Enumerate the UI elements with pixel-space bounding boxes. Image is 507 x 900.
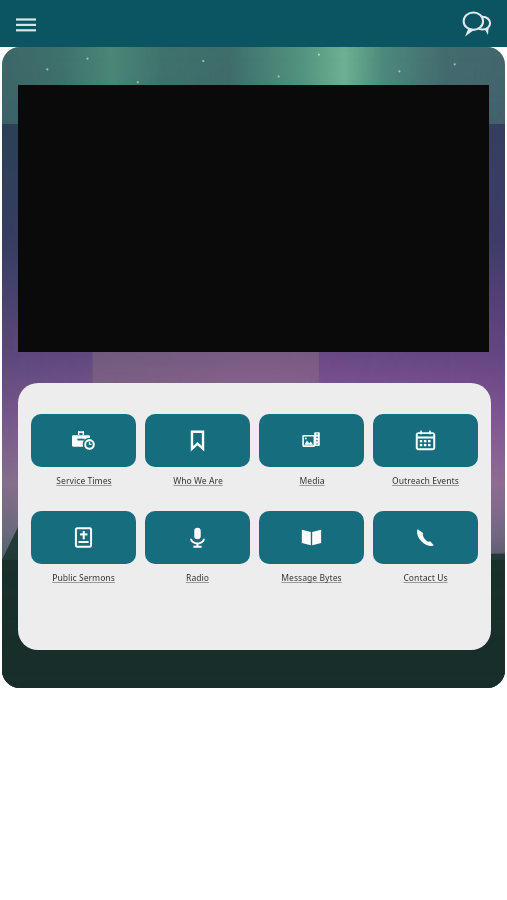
button[interactable]: Menu bbox=[8, 6, 44, 42]
button[interactable] bbox=[259, 414, 364, 467]
button[interactable] bbox=[31, 511, 136, 564]
staticText: Radio bbox=[186, 572, 209, 584]
button[interactable] bbox=[145, 511, 250, 564]
staticText: Who We Are bbox=[173, 475, 223, 487]
button[interactable] bbox=[31, 414, 136, 467]
staticText: Contact Us bbox=[403, 572, 448, 584]
staticText: Message Bytes bbox=[281, 572, 342, 584]
staticText: Outreach Events bbox=[392, 475, 459, 487]
button[interactable]: Chat bbox=[457, 4, 497, 44]
button[interactable] bbox=[373, 511, 478, 564]
staticText: Public Sermons bbox=[52, 572, 115, 584]
staticText: Media bbox=[299, 475, 325, 487]
button[interactable] bbox=[259, 511, 364, 564]
button[interactable] bbox=[145, 414, 250, 467]
button[interactable] bbox=[373, 414, 478, 467]
staticText: Service Times bbox=[56, 475, 112, 487]
